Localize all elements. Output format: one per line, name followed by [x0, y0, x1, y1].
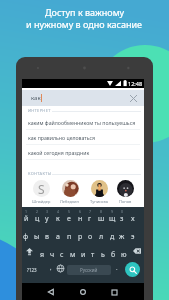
- button[interactable]: ю: [119, 245, 129, 260]
- button[interactable]: Home: [77, 286, 89, 298]
- staticText: 0: [121, 209, 124, 214]
- button[interactable]: ?123: [25, 263, 39, 277]
- staticText: 6: [79, 209, 82, 214]
- button[interactable]: 1: [21, 209, 31, 224]
- staticText: КОНТАКТЫ: [28, 171, 52, 176]
- button[interactable]: 6: [75, 209, 85, 224]
- button[interactable]: 5: [64, 209, 74, 224]
- button[interactable]: Search: [125, 262, 140, 277]
- staticText: щ: [109, 214, 116, 224]
- staticText: 2: [36, 209, 39, 214]
- staticText: в: [45, 232, 49, 242]
- button[interactable]: ь: [98, 245, 108, 260]
- other: Clear query: [130, 95, 137, 102]
- staticText: л: [99, 232, 104, 242]
- staticText: я: [40, 250, 45, 260]
- staticText: какой сегодня праздник: [28, 149, 90, 156]
- button[interactable]: ы: [32, 227, 42, 242]
- staticText: т: [91, 250, 95, 260]
- button[interactable]: р: [75, 227, 85, 242]
- staticText: 8: [100, 209, 103, 214]
- staticText: ,: [50, 264, 52, 272]
- staticText: каким файлообменником ты пользуешься: [28, 119, 136, 126]
- staticText: з: [120, 214, 124, 224]
- staticText: Шнайдер: [32, 199, 51, 204]
- button[interactable]: 8: [96, 209, 106, 224]
- button[interactable]: Русский: [67, 265, 111, 275]
- button[interactable]: .: [112, 263, 122, 273]
- staticText: м: [70, 250, 76, 260]
- button[interactable]: 3: [42, 209, 52, 224]
- button[interactable]: Backspace: [131, 245, 143, 257]
- button[interactable]: 0: [117, 209, 127, 224]
- button[interactable]: с: [57, 245, 67, 260]
- staticText: .: [116, 264, 118, 272]
- staticText: о: [88, 232, 93, 242]
- button[interactable]: какой сегодня праздник: [22, 145, 144, 160]
- button[interactable]: и: [78, 245, 88, 260]
- button[interactable]: х: [128, 209, 138, 224]
- staticText: й: [24, 214, 29, 224]
- staticText: Русский: [80, 267, 98, 273]
- button[interactable]: д: [107, 227, 117, 242]
- staticText: 12:48: [128, 80, 143, 87]
- button[interactable]: Recent apps: [108, 286, 120, 298]
- staticText: ф: [23, 232, 29, 242]
- button[interactable]: 2: [32, 209, 42, 224]
- button[interactable]: в: [42, 227, 52, 242]
- staticText: х: [131, 214, 135, 224]
- staticText: 4: [57, 209, 60, 214]
- button[interactable]: Shift: [23, 245, 35, 257]
- staticText: г: [88, 214, 92, 224]
- button[interactable]: ,: [46, 263, 56, 273]
- staticText: ю: [121, 250, 127, 260]
- button[interactable]: ч: [47, 245, 57, 260]
- staticText: с: [60, 250, 64, 260]
- button[interactable]: каким файлообменником ты пользуешься: [22, 115, 144, 130]
- button[interactable]: Back: [45, 286, 57, 298]
- staticText: д: [110, 232, 115, 242]
- staticText: Доступ к важному: [45, 6, 125, 18]
- staticText: ИНТЕРНЕТ: [28, 108, 51, 113]
- button[interactable]: Лебедкин: [60, 180, 80, 204]
- button[interactable]: э: [128, 227, 138, 242]
- staticText: и: [81, 250, 86, 260]
- button[interactable]: как правильно целоваться: [22, 130, 144, 145]
- button[interactable]: S: [32, 180, 51, 204]
- button[interactable]: м: [68, 245, 78, 260]
- staticText: а: [56, 232, 60, 242]
- staticText: ц: [35, 214, 40, 224]
- staticText: к: [56, 214, 60, 224]
- staticText: ч: [50, 250, 55, 260]
- staticText: ь: [101, 250, 105, 260]
- staticText: как правильно целоваться: [28, 134, 96, 141]
- staticText: ш: [98, 214, 105, 224]
- staticText: у: [45, 214, 49, 224]
- button[interactable]: я: [37, 245, 47, 260]
- button[interactable]: б: [108, 245, 118, 260]
- staticText: 3: [46, 209, 49, 214]
- staticText: S: [38, 181, 45, 197]
- staticText: п: [67, 232, 72, 242]
- button[interactable]: а: [53, 227, 63, 242]
- staticText: б: [111, 250, 116, 260]
- button[interactable]: как: [22, 90, 144, 106]
- staticText: Попов: [119, 199, 132, 204]
- button[interactable]: о: [85, 227, 95, 242]
- button[interactable]: Попов: [117, 180, 134, 204]
- button[interactable]: 9: [107, 209, 117, 224]
- staticText: ы: [34, 232, 40, 242]
- button[interactable]: Change language: [55, 263, 65, 273]
- button[interactable]: ф: [21, 227, 31, 242]
- staticText: 5: [68, 209, 71, 214]
- button[interactable]: Тунисова: [90, 180, 108, 204]
- button[interactable]: ж: [117, 227, 127, 242]
- staticText: Тунисова: [90, 199, 108, 204]
- button[interactable]: п: [64, 227, 74, 242]
- staticText: р: [78, 232, 83, 242]
- button[interactable]: 7: [85, 209, 95, 224]
- button[interactable]: л: [96, 227, 106, 242]
- button[interactable]: т: [88, 245, 98, 260]
- staticText: э: [131, 232, 135, 242]
- button[interactable]: 4: [53, 209, 63, 224]
